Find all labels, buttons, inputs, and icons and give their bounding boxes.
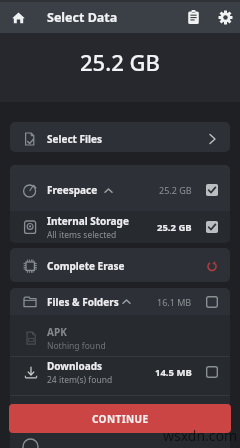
staticText: Select Files <box>47 132 204 146</box>
staticText: 25.2 GB <box>157 221 192 234</box>
staticText: Downloads <box>47 359 102 373</box>
staticText: wsxdn.com <box>163 426 238 445</box>
staticText: APK <box>47 325 67 339</box>
button[interactable] <box>217 9 234 26</box>
staticText: All items selected <box>47 229 117 241</box>
staticText: 25.2 GB <box>80 47 160 77</box>
staticText: 16.1 MB <box>157 296 192 308</box>
button[interactable]: Select Files <box>10 122 230 152</box>
button[interactable] <box>10 9 27 26</box>
button[interactable]: Freespace <box>10 165 230 211</box>
button[interactable]: CONTINUE <box>9 404 231 433</box>
staticText: CONTINUE <box>92 412 149 426</box>
button[interactable]: Files & Folders <box>10 288 230 315</box>
button[interactable]: APK <box>10 315 230 356</box>
staticText: 24 item(s) found <box>47 374 113 386</box>
staticText: Files & Folders <box>47 295 119 309</box>
staticText: Freespace <box>47 183 98 197</box>
button[interactable]: Complete Erase <box>10 248 230 282</box>
staticText: Select Data <box>47 9 118 26</box>
button[interactable] <box>206 184 218 196</box>
staticText: Complete Erase <box>47 259 204 273</box>
staticText: Internal Storage <box>47 214 129 228</box>
button[interactable] <box>206 221 218 233</box>
button[interactable]: Downloads <box>10 357 230 395</box>
button[interactable] <box>185 9 202 26</box>
staticText: Nothing found <box>47 340 106 352</box>
button[interactable]: Internal Storage <box>10 211 230 243</box>
button[interactable] <box>206 366 218 378</box>
staticText: 25.2 GB <box>159 184 192 196</box>
staticText: 14.5 MB <box>155 366 192 379</box>
button[interactable] <box>206 296 218 308</box>
